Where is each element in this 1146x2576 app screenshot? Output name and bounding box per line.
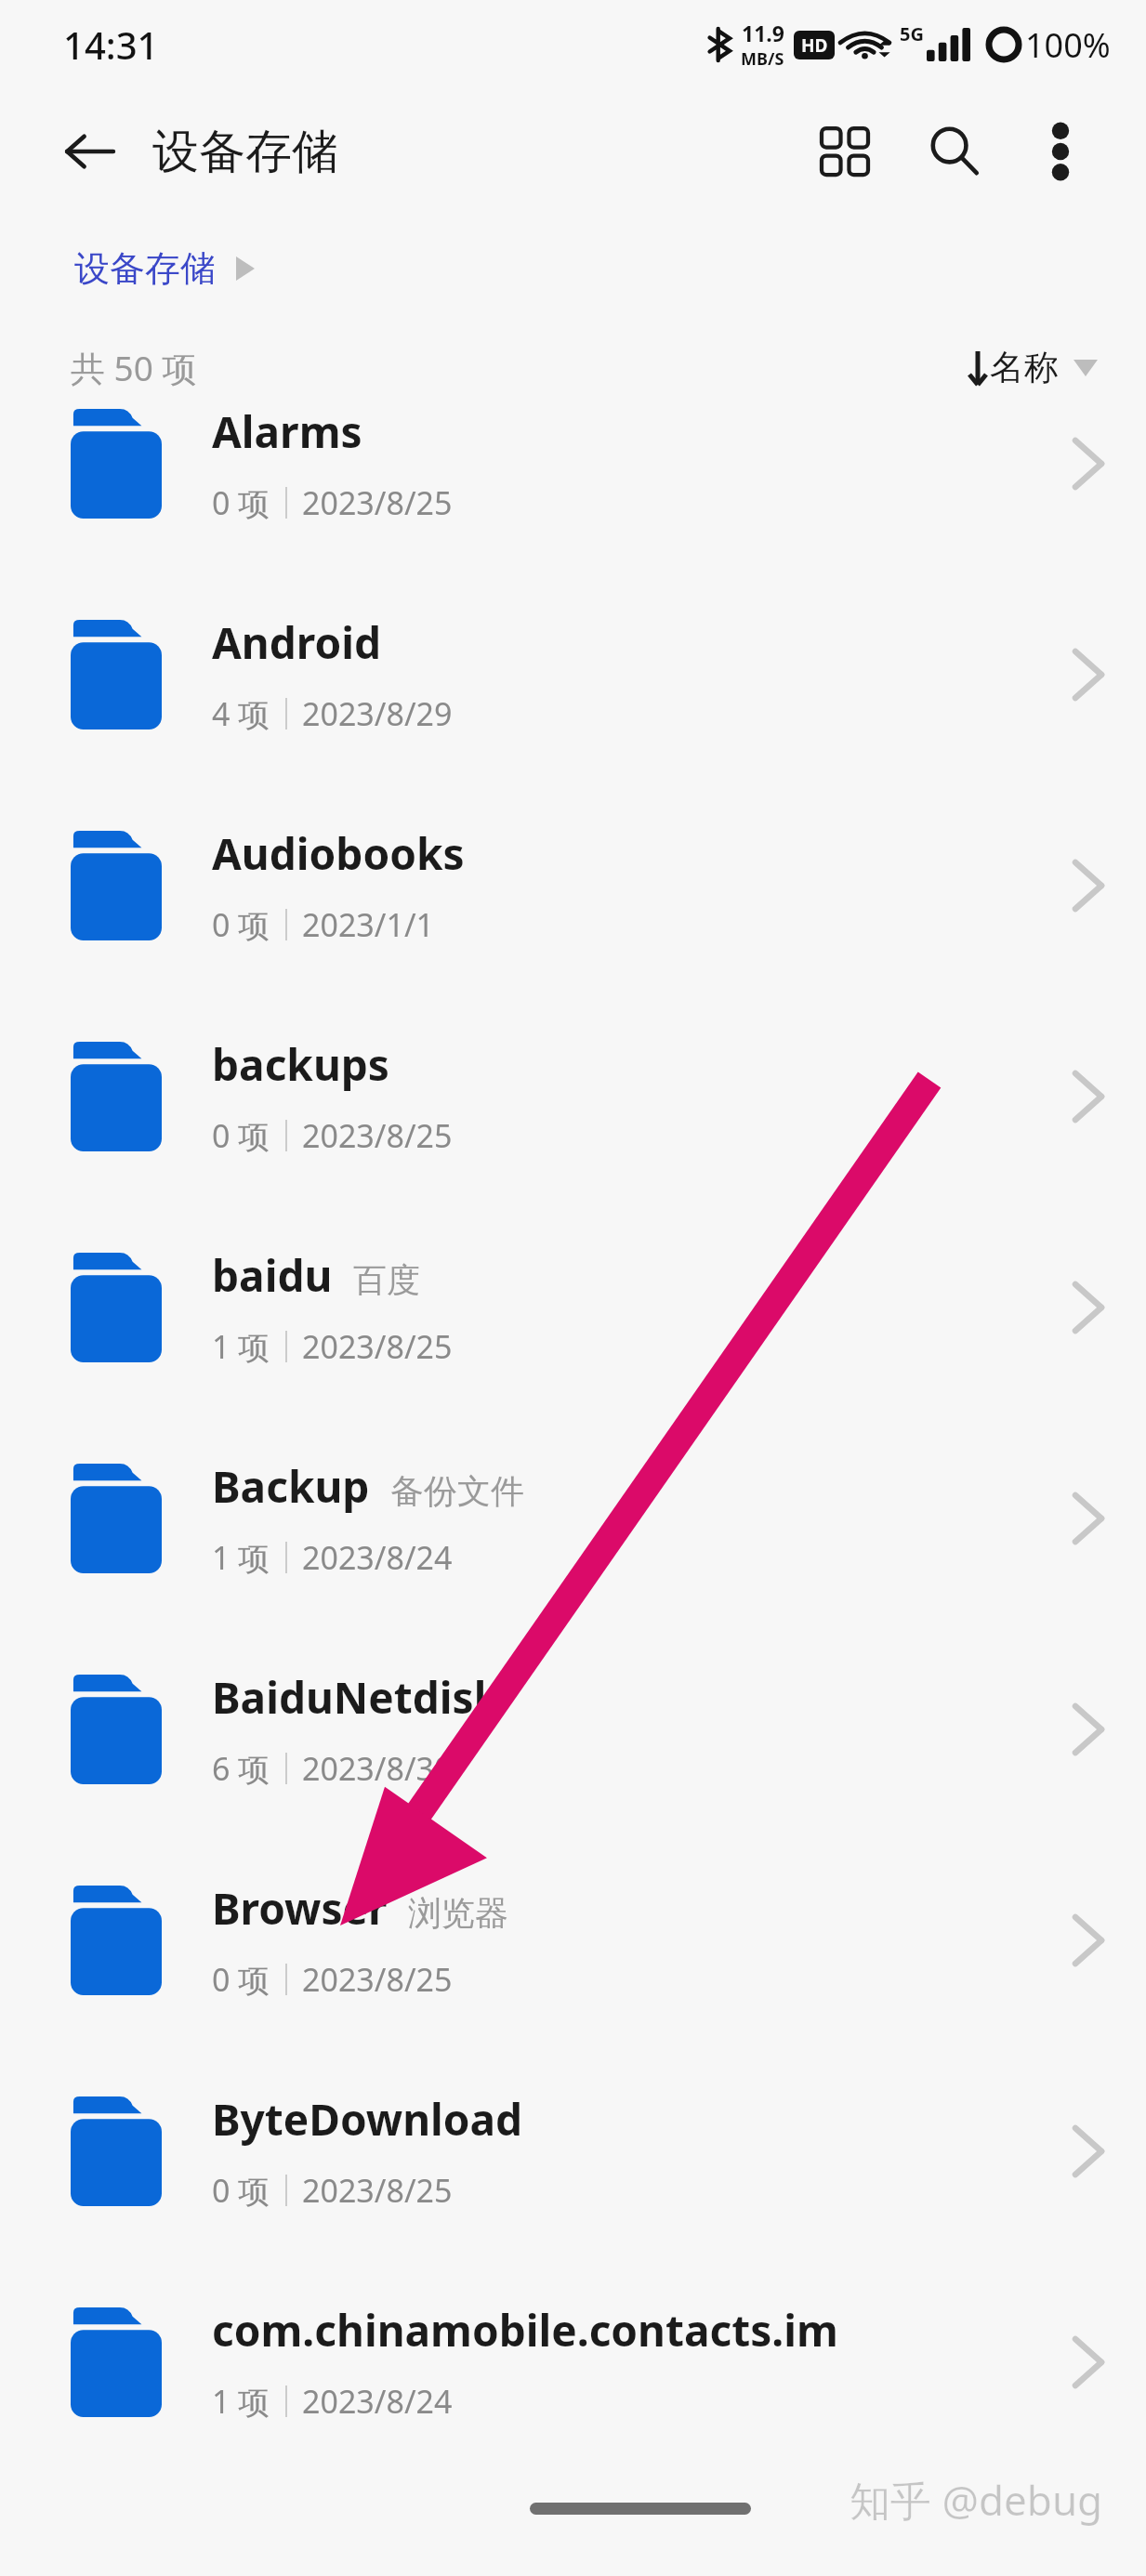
staticText: 14:31 [63,20,159,70]
staticText: BaiduNetdisk [212,1668,501,1727]
button[interactable]: ByteDownload [0,2045,1146,2256]
staticText: MB/S [741,47,784,71]
staticText: 共 50 项 [71,344,197,391]
staticText: 2023/8/24 [302,1536,453,1579]
staticText: 0 项 [212,481,270,524]
staticText: 11.9 [742,19,784,47]
staticText: 2023/8/25 [302,1114,453,1157]
staticText: 1 项 [212,1325,270,1368]
button[interactable]: Alarms [0,358,1146,569]
staticText: 2023/8/25 [302,1325,453,1368]
staticText: 0 项 [212,2169,270,2212]
staticText: 2023/8/25 [302,2169,453,2212]
staticText: 0 项 [212,1114,270,1157]
staticText: 2023/8/25 [302,481,453,524]
button[interactable]: 设备存储 [71,235,258,302]
staticText: Audiobooks [212,824,465,883]
staticText: 设备存储 [152,123,338,181]
button[interactable]: BaiduNetdisk [0,1623,1146,1834]
staticText: 100% [1025,22,1111,68]
staticText: 4 项 [212,692,270,735]
staticText: 2023/8/24 [302,2380,453,2423]
staticText: 设备存储 [74,246,216,291]
button[interactable]: com.chinamobile.contacts.im [0,2256,1146,2467]
staticText: 2023/1/1 [302,903,434,946]
staticText: 0 项 [212,1958,270,2001]
staticText: HD [801,33,828,58]
staticText: 6 项 [212,1747,270,1790]
staticText: Backup [212,1457,370,1516]
staticText: Android [212,613,382,672]
staticText: 名称 [990,346,1059,389]
button[interactable]: baidu [0,1202,1146,1413]
staticText: 0 项 [212,903,270,946]
button[interactable]: Android [0,569,1146,780]
staticText: 备份文件 [390,1470,524,1512]
button[interactable]: Backup [0,1413,1146,1623]
staticText: com.chinamobile.contacts.im [212,2301,838,2359]
staticText: 百度 [353,1259,420,1301]
staticText: ByteDownload [212,2090,523,2149]
button[interactable]: Grid view [800,107,889,196]
button[interactable]: Back [50,112,128,191]
staticText: baidu [212,1246,333,1305]
button[interactable]: 名称 [958,338,1105,397]
button[interactable]: Browser [0,1834,1146,2045]
staticText: 1 项 [212,1536,270,1579]
staticText: Browser [212,1879,388,1938]
staticText: 1 项 [212,2380,270,2423]
staticText: 2023/8/25 [302,1958,453,2001]
staticText: backups [212,1035,389,1094]
staticText: 浏览器 [408,1892,508,1934]
button[interactable]: More options [1016,107,1105,196]
staticText: Alarms [212,402,362,461]
button[interactable]: backups [0,991,1146,1202]
button[interactable]: Audiobooks [0,780,1146,991]
button[interactable]: Search [910,107,999,196]
staticText: 知乎 @debug [850,2472,1103,2528]
staticText: 5G [900,21,924,46]
staticText: 2023/8/29 [302,692,453,735]
staticText: 2023/8/30 [302,1747,453,1790]
